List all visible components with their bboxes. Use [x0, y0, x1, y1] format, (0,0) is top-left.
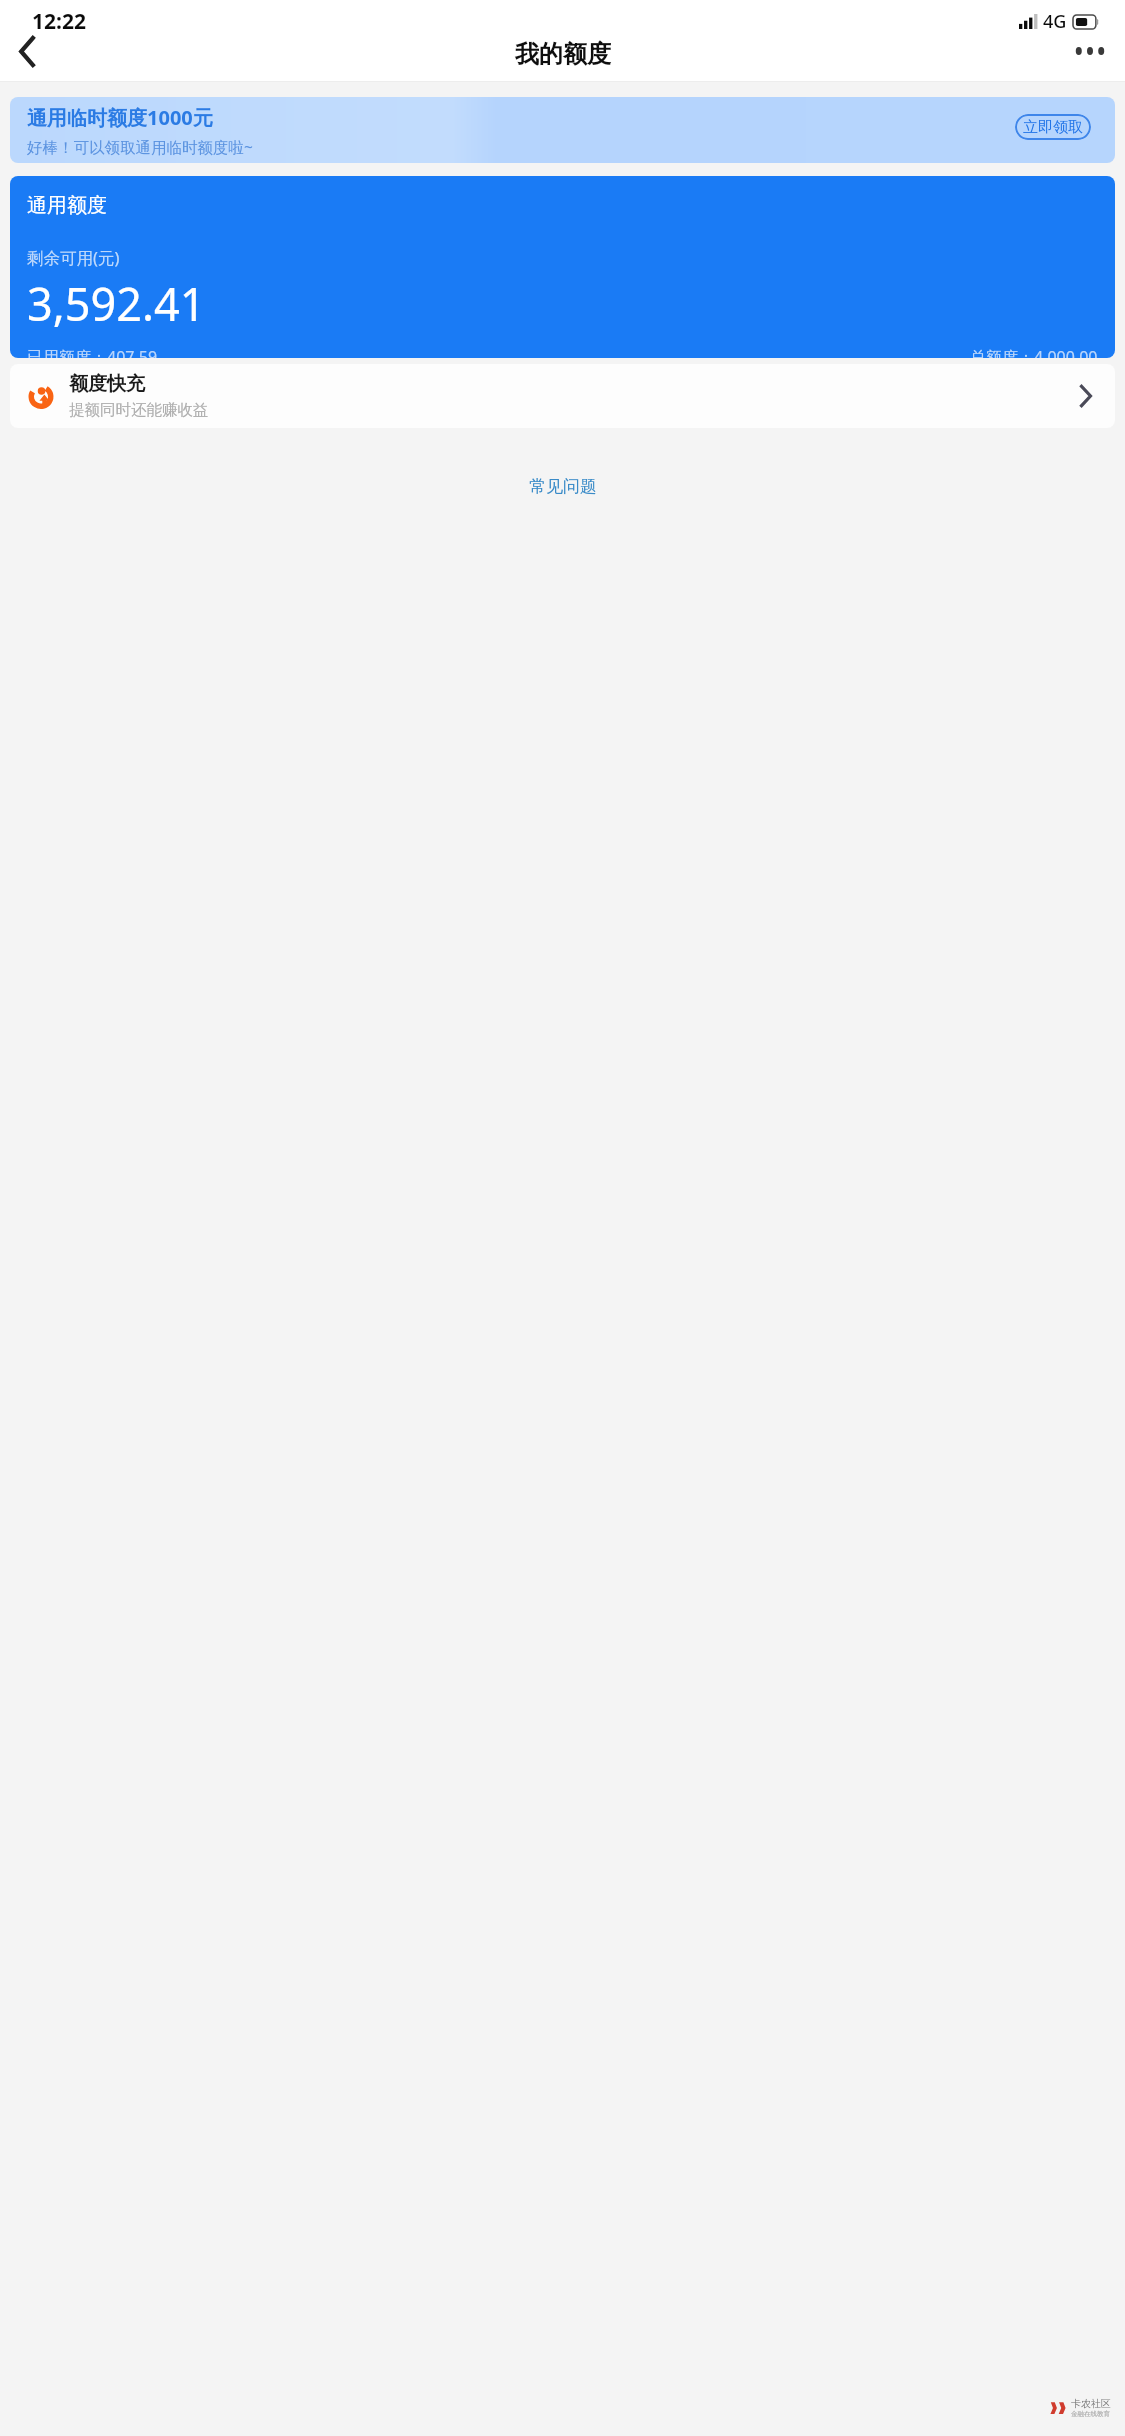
button[interactable]: More options: [1063, 24, 1117, 78]
staticText: 12:22: [32, 7, 86, 36]
staticText: 通用临时额度1000元: [27, 104, 213, 131]
button[interactable]: 额度快充: [10, 364, 1115, 428]
other: Open 额度快充: [1079, 385, 1093, 407]
button[interactable]: 通用临时额度1000元: [10, 97, 1115, 163]
staticText: 3,592.41: [27, 273, 206, 334]
staticText: 好棒！可以领取通用临时额度啦~: [27, 136, 253, 157]
staticText: 立即领取: [1023, 118, 1083, 137]
staticText: 额度快充: [69, 372, 145, 396]
staticText: 通用额度: [27, 193, 107, 218]
staticText: 已用额度：407.59: [27, 346, 158, 358]
button[interactable]: 常见问题: [519, 472, 607, 501]
staticText: 我的额度: [515, 39, 611, 69]
button[interactable]: 通用额度: [10, 176, 1115, 358]
staticText: 金融在线教育: [1071, 2410, 1110, 2418]
staticText: 4G: [1043, 9, 1067, 34]
staticText: 提额同时还能赚收益: [69, 400, 209, 420]
staticText: 卡农社区: [1071, 2397, 1111, 2410]
button[interactable]: 立即领取: [1015, 114, 1091, 140]
staticText: 总额度：4,000.00: [970, 346, 1098, 358]
staticText: 常见问题: [529, 476, 597, 497]
staticText: 剩余可用(元): [27, 246, 120, 269]
button[interactable]: Back: [0, 24, 54, 78]
